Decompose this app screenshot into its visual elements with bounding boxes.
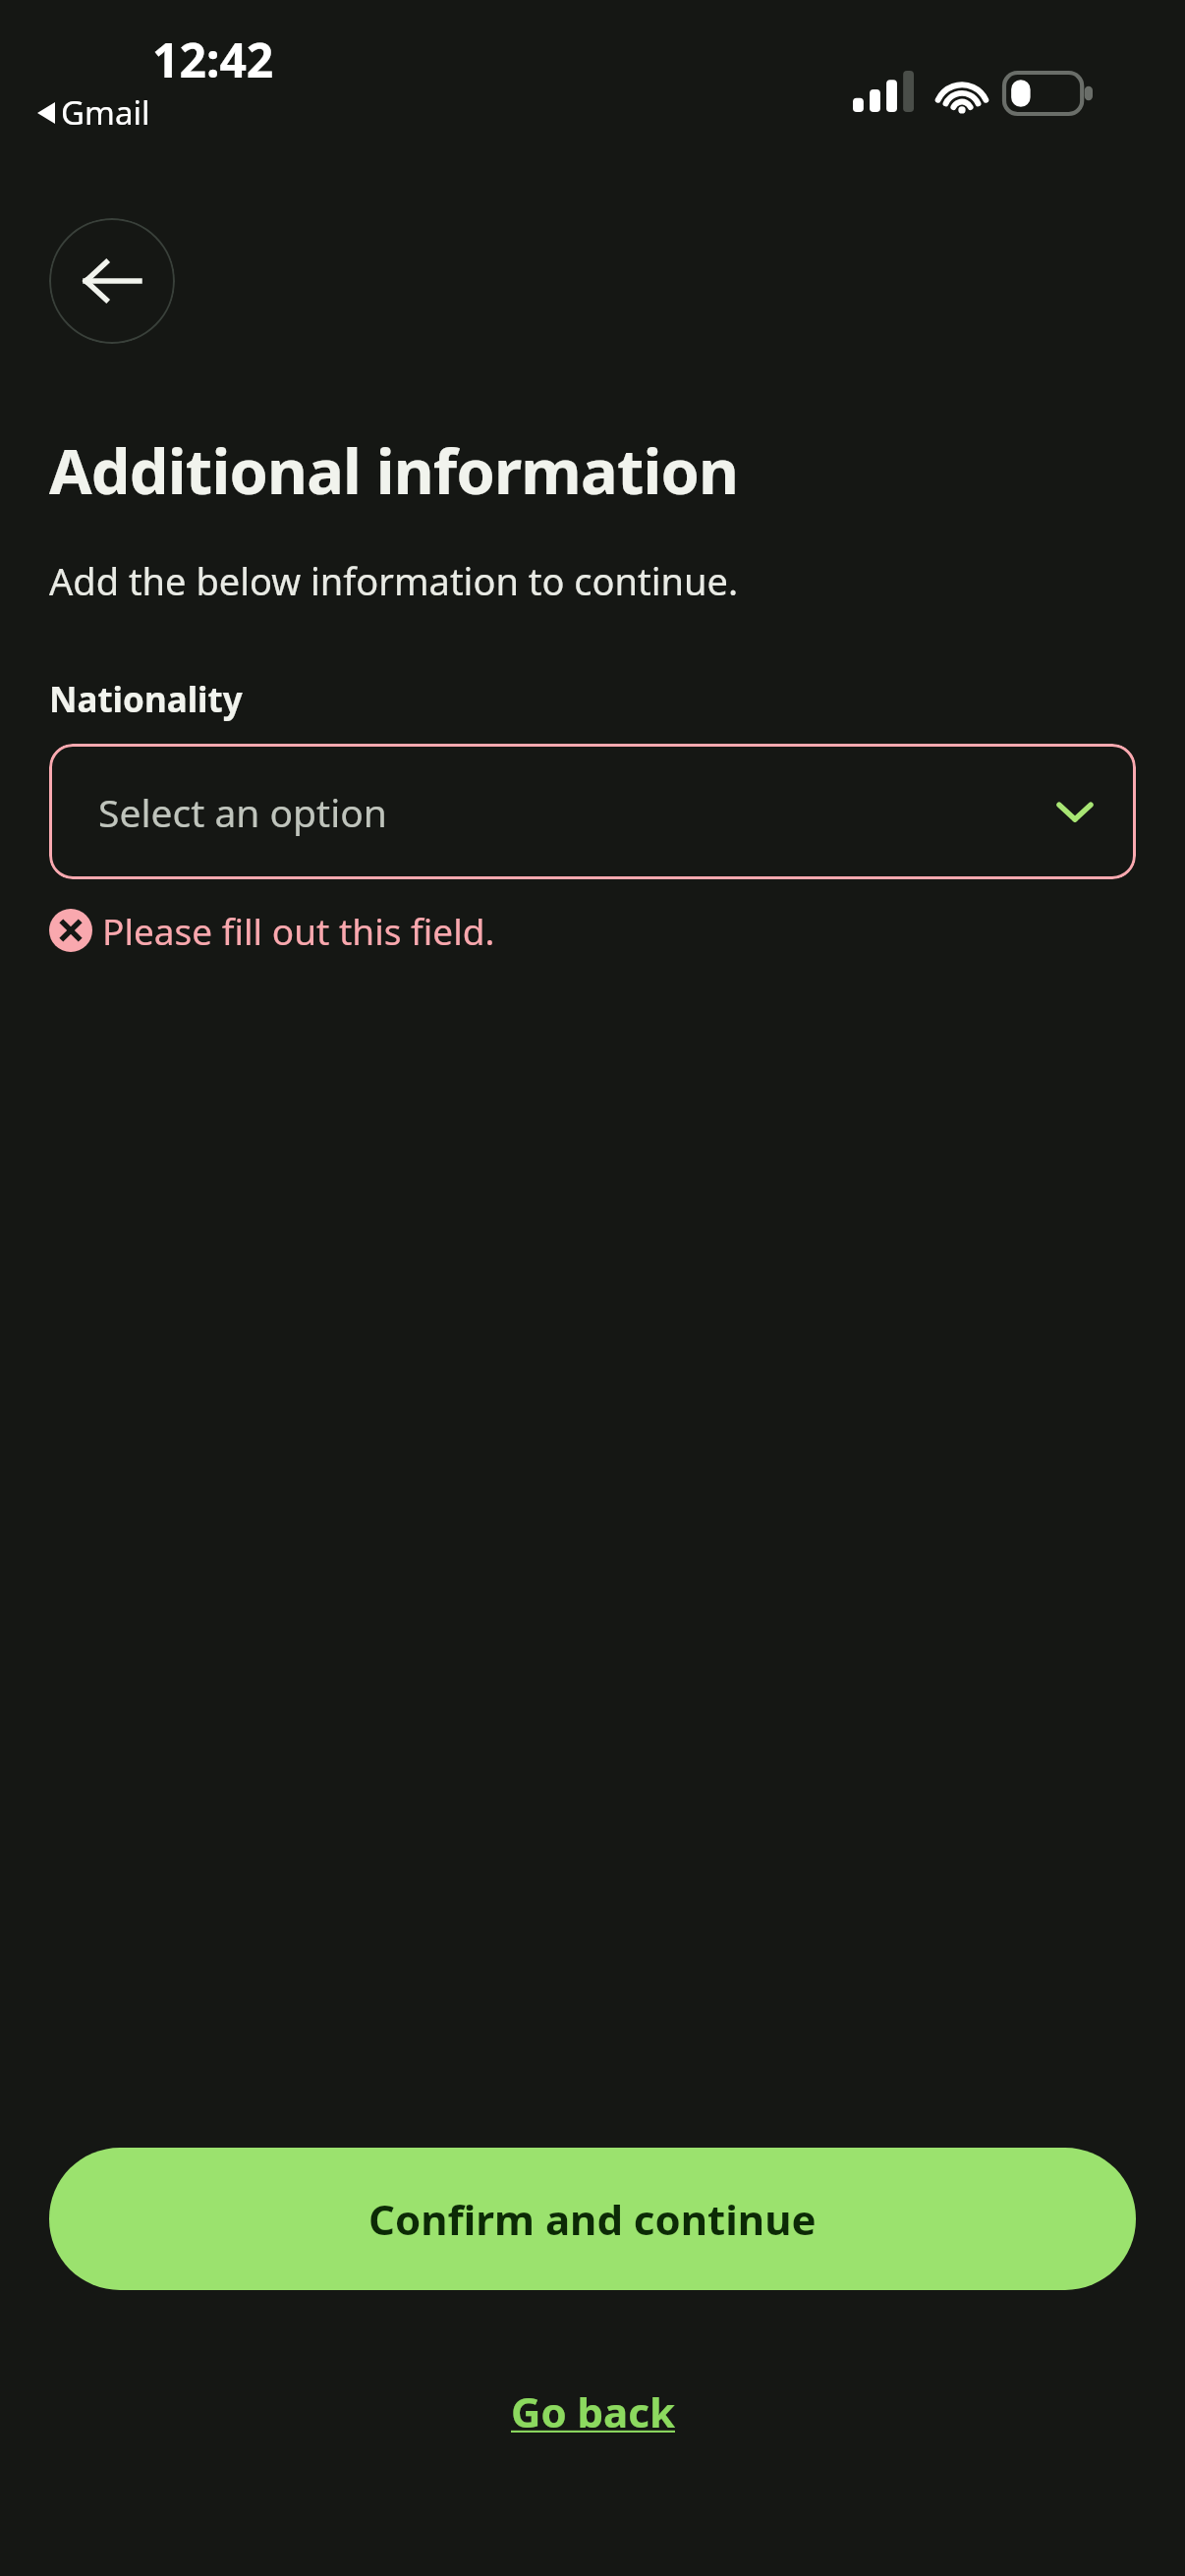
button[interactable]: Confirm and continue — [49, 2148, 1136, 2290]
button[interactable]: Back — [49, 218, 175, 344]
staticText: Gmail — [61, 90, 150, 135]
staticText: Go back — [511, 2383, 675, 2439]
staticText: 12:42 — [152, 28, 274, 91]
staticText: Additional information — [49, 428, 739, 513]
button[interactable]: Select an option — [49, 744, 1136, 879]
staticText: Confirm and continue — [368, 2191, 817, 2247]
staticText: Select an option — [98, 786, 387, 838]
staticText: Add the below information to continue. — [49, 555, 739, 606]
staticText: Please fill out this field. — [102, 906, 495, 955]
button[interactable]: Go back — [499, 2376, 687, 2447]
button[interactable]: Back to Gmail — [37, 90, 150, 135]
staticText: Nationality — [49, 676, 243, 723]
